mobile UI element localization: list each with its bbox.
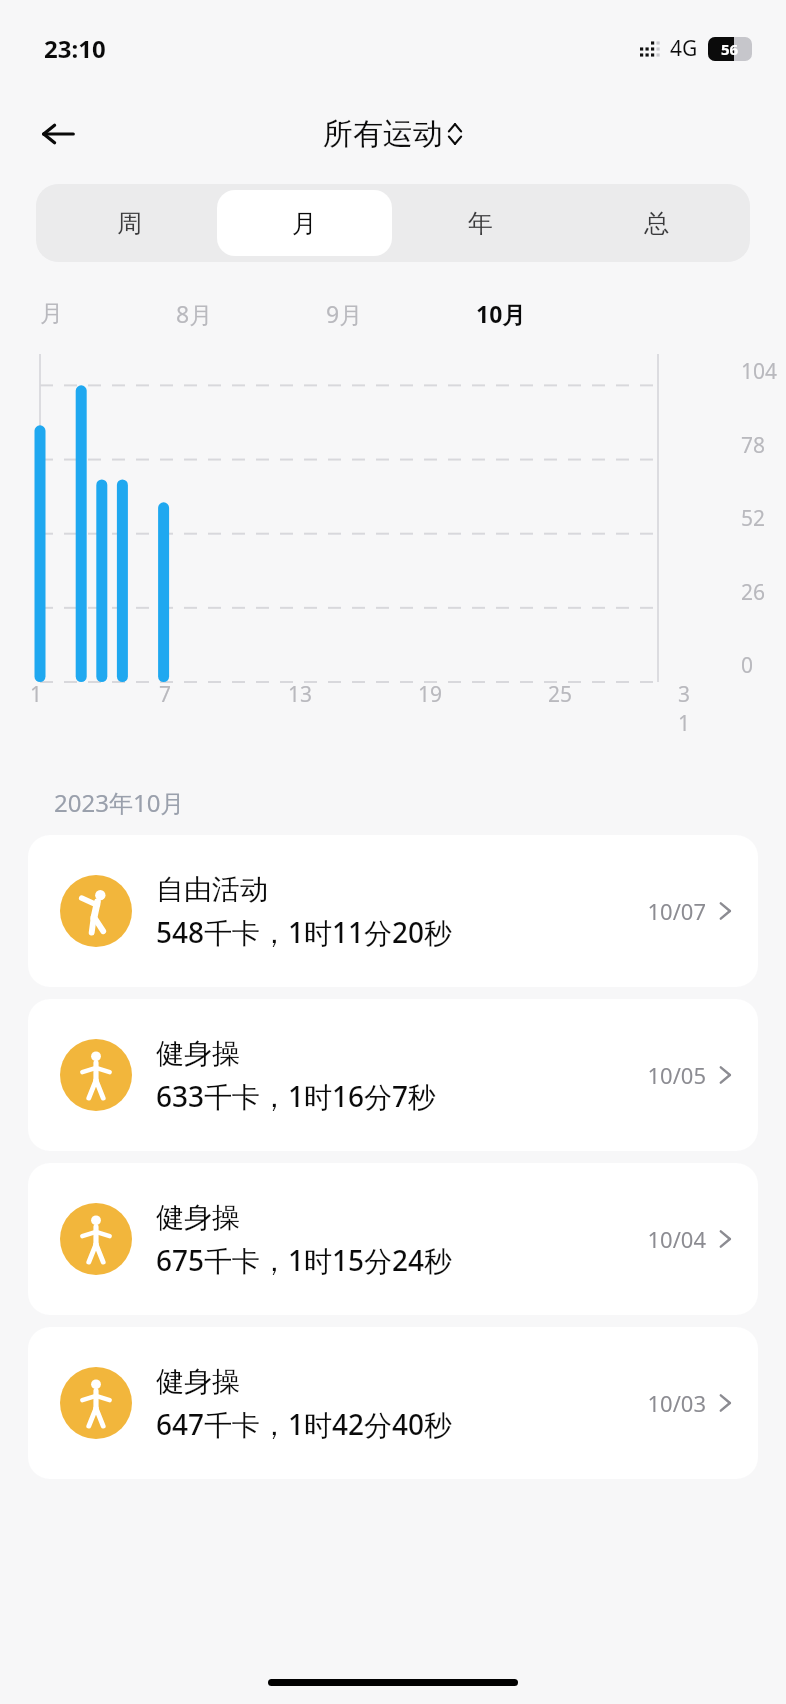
button[interactable]: 年 (392, 190, 568, 256)
button[interactable]: 月 (40, 299, 63, 328)
staticText: 52 (741, 504, 766, 533)
staticText: 56 (721, 39, 739, 59)
staticText: 所有运动 (323, 115, 443, 153)
staticText: 7 (159, 680, 172, 709)
staticText: 0 (741, 651, 754, 680)
button[interactable]: 所有运动 (323, 115, 463, 153)
staticText: 10/07 (647, 896, 706, 926)
button[interactable]: 9月 (326, 298, 363, 329)
staticText: 2023年10月 (54, 786, 185, 819)
staticText: 675千卡，1时15分24秒 (156, 1241, 453, 1279)
button[interactable]: 月 (217, 190, 392, 256)
staticText: 周 (117, 208, 142, 239)
staticText: 4G (670, 34, 698, 63)
staticText: 1 (30, 680, 43, 709)
button[interactable]: 10月 (476, 298, 526, 329)
staticText: 月 (40, 299, 63, 328)
staticText: 26 (741, 578, 766, 607)
staticText: 23:10 (44, 32, 106, 65)
staticText: 10/05 (647, 1060, 706, 1090)
button[interactable]: 健身操 (28, 999, 758, 1151)
staticText: 总 (644, 208, 669, 239)
button[interactable]: Back (30, 106, 86, 162)
staticText: 10月 (476, 298, 526, 329)
staticText: 104 (741, 357, 778, 386)
button[interactable]: 自由活动 (28, 835, 758, 987)
staticText: 10/03 (647, 1388, 706, 1418)
staticText: 自由活动 (156, 872, 268, 907)
staticText: 月 (292, 208, 317, 239)
button[interactable]: 8月 (176, 298, 213, 329)
staticText: 健身操 (156, 1364, 240, 1399)
button[interactable]: 健身操 (28, 1163, 758, 1315)
staticText: 633千卡，1时16分7秒 (156, 1077, 437, 1115)
staticText: 9月 (326, 298, 363, 329)
staticText: 健身操 (156, 1036, 240, 1071)
staticText: 548千卡，1时11分20秒 (156, 913, 453, 951)
staticText: 19 (418, 680, 443, 709)
staticText: 健身操 (156, 1200, 240, 1235)
staticText: 25 (548, 680, 573, 709)
button[interactable]: 总 (568, 190, 744, 256)
staticText: 78 (741, 431, 766, 460)
staticText: 年 (468, 208, 493, 239)
staticText: 10/04 (647, 1224, 706, 1254)
button[interactable]: 健身操 (28, 1327, 758, 1479)
button[interactable]: 周 (42, 190, 217, 256)
staticText: 8月 (176, 298, 213, 329)
staticText: 13 (288, 680, 313, 709)
staticText: 647千卡，1时42分40秒 (156, 1405, 453, 1443)
